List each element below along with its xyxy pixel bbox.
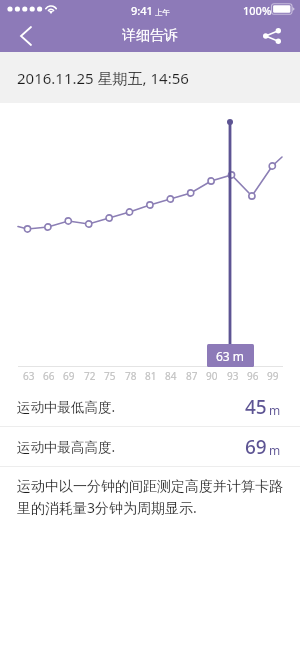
staticText: 87 (186, 369, 198, 383)
staticText: 详细告诉 (122, 27, 178, 45)
staticText: 81 (145, 369, 157, 383)
staticText: 63 (23, 369, 35, 383)
staticText: 9:41 (131, 3, 153, 18)
staticText: 99 (267, 369, 279, 383)
staticText: 运动中以一分钟的间距测定高度并计算卡路里的消耗量3分钟为周期显示. (17, 478, 283, 518)
button[interactable]: 63 m (207, 344, 254, 367)
staticText: 75 (104, 369, 116, 383)
staticText: 69 (63, 369, 75, 383)
staticText: 运动中最高高度. (17, 438, 116, 456)
staticText: 78 (125, 369, 137, 383)
staticText: 45 (245, 394, 267, 420)
staticText: m (269, 442, 281, 458)
staticText: 69 (245, 434, 267, 460)
staticText: 72 (84, 369, 96, 383)
staticText: 96 (247, 369, 259, 383)
staticText: m (269, 402, 281, 418)
button[interactable]: Back (0, 20, 46, 52)
staticText: 93 (227, 369, 239, 383)
button[interactable]: Share (254, 20, 300, 52)
staticText: 100% (243, 3, 272, 18)
staticText: 运动中最低高度. (17, 398, 116, 416)
button[interactable]: 运动中最低高度. (0, 387, 300, 426)
staticText: 90 (206, 369, 218, 383)
staticText: 63 m (216, 348, 245, 364)
staticText: 84 (165, 369, 177, 383)
staticText: 上午 (155, 8, 170, 17)
button[interactable]: 运动中最高高度. (0, 427, 300, 466)
staticText: 66 (43, 369, 55, 383)
staticText: 2016.11.25 星期五, 14:56 (17, 68, 189, 88)
